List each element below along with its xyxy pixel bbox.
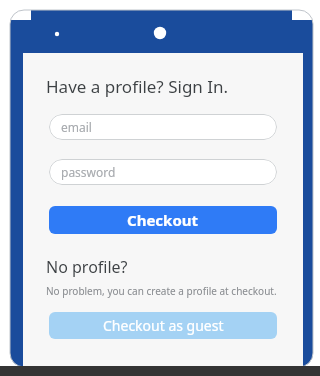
staticText: password	[61, 164, 116, 180]
button[interactable]: Checkout as guest	[49, 312, 277, 339]
staticText: Have a profile? Sign In.	[46, 75, 229, 98]
staticText: No profile?	[46, 256, 128, 278]
staticText: Checkout	[127, 210, 199, 230]
staticText: No problem, you can create a profile at …	[46, 284, 277, 298]
button[interactable]: Checkout	[49, 206, 277, 234]
other: Front camera	[140, 27, 154, 41]
staticText: email	[61, 119, 92, 135]
button[interactable]: email	[49, 114, 277, 140]
staticText: Checkout as guest	[103, 316, 224, 335]
button[interactable]: password	[49, 159, 277, 185]
